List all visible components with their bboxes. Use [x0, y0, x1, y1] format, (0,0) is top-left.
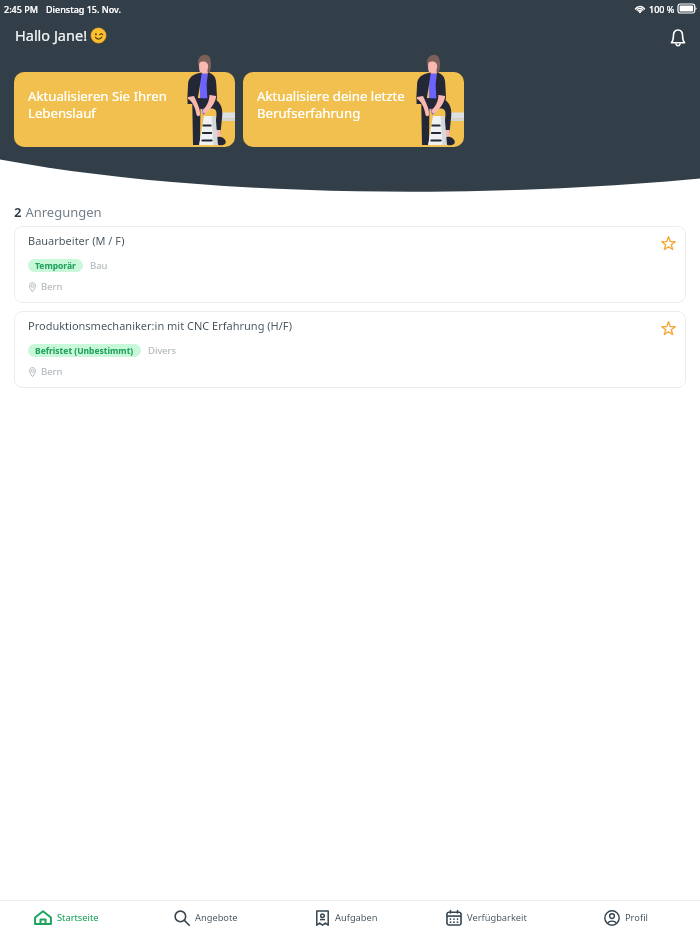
button[interactable]: Benachrichtigungen: [662, 22, 694, 54]
staticText: Divers: [148, 344, 177, 357]
staticText: 2: [14, 203, 22, 221]
staticText: Aktualisiere deine letzte Berufserfahrun…: [257, 87, 405, 121]
staticText: Dienstag 15. Nov.: [46, 3, 121, 15]
staticText: Bern: [41, 280, 63, 293]
staticText: Hallo Jane!: [15, 25, 88, 45]
button[interactable]: Startseite: [0, 901, 136, 934]
button[interactable]: Aktualisiere deine letzte Berufserfahrun…: [243, 72, 464, 147]
button[interactable]: Aufgaben: [276, 901, 416, 934]
staticText: Befristet (Unbestimmt): [35, 345, 134, 357]
staticText: Bau: [90, 259, 108, 272]
staticText: 100 %: [649, 3, 675, 15]
button[interactable]: Verfügbarkeit: [416, 901, 556, 934]
button[interactable]: Profil: [556, 901, 696, 934]
staticText: Angebote: [195, 911, 238, 924]
button[interactable]: Favorit: [658, 233, 678, 253]
staticText: Bauarbeiter (M / F): [28, 233, 125, 248]
staticText: Startseite: [57, 911, 99, 924]
staticText: Temporär: [35, 260, 76, 272]
button[interactable]: Bauarbeiter (M / F): [14, 226, 686, 303]
button[interactable]: Produktionsmechaniker:in mit CNC Erfahru…: [14, 311, 686, 388]
staticText: Bern: [41, 365, 63, 378]
staticText: Produktionsmechaniker:in mit CNC Erfahru…: [28, 318, 293, 333]
button[interactable]: Aktualisieren Sie Ihren Lebenslauf: [14, 72, 235, 147]
staticText: Aktualisieren Sie Ihren Lebenslauf: [28, 87, 167, 121]
staticText: Aufgaben: [335, 911, 378, 924]
staticText: Verfügbarkeit: [467, 911, 527, 924]
staticText: Profil: [625, 911, 648, 924]
button[interactable]: Angebote: [136, 901, 276, 934]
staticText: 2:45 PM: [4, 3, 38, 15]
button[interactable]: Favorit: [658, 318, 678, 338]
staticText: Anregungen: [22, 203, 102, 221]
